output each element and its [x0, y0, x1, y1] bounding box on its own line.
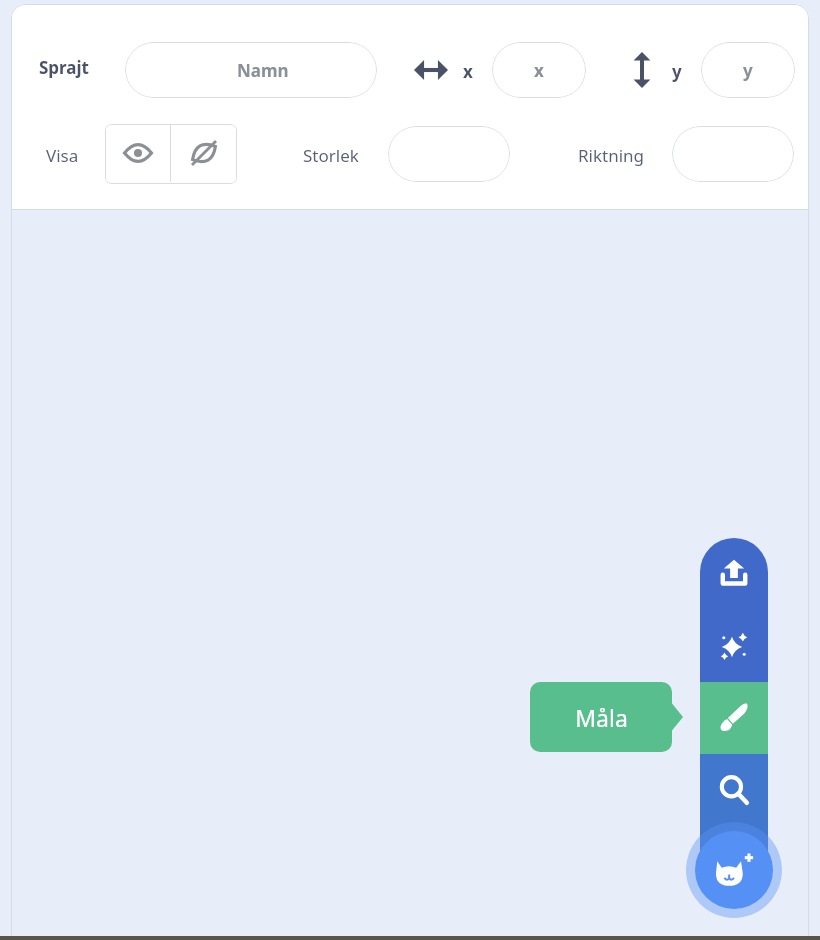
staticText: Visa	[46, 144, 79, 167]
staticText: y	[743, 59, 753, 82]
button[interactable]: Måla	[530, 682, 672, 752]
staticText: x	[534, 59, 544, 82]
staticText: Måla	[575, 702, 628, 733]
staticText: y	[672, 60, 682, 83]
other: Horizontal position	[414, 58, 448, 82]
staticText: Storlek	[303, 144, 359, 167]
button[interactable]: Direction field	[672, 126, 794, 182]
button[interactable]: Size field	[388, 126, 510, 182]
button[interactable]: Paint sprite	[700, 682, 768, 754]
button[interactable]: Show sprite	[105, 124, 170, 182]
button[interactable]: Choose a sprite	[686, 822, 782, 918]
button[interactable]: Hide sprite	[171, 124, 236, 182]
other: Vertical position	[632, 52, 652, 88]
button[interactable]: Search sprite	[700, 754, 768, 826]
button[interactable]: Surprise sprite	[700, 610, 768, 682]
button[interactable]: y value field	[701, 42, 795, 98]
button[interactable]: x value field	[492, 42, 586, 98]
staticText: Riktning	[578, 144, 645, 167]
button[interactable]: Upload sprite	[700, 538, 768, 610]
staticText: x	[463, 60, 473, 83]
button[interactable]: Sprite name field	[125, 42, 377, 98]
staticText: Namn	[237, 59, 289, 82]
staticText: Sprajt	[39, 56, 89, 79]
